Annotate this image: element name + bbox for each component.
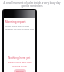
- staticText: gentle reminders: [0, 4, 64, 8]
- button[interactable]: [4, 10, 35, 18]
- staticText: Today there are no new updates to look a…: [5, 25, 36, 30]
- staticText: A small moment of calm inside a very bus…: [0, 1, 64, 5]
- staticText: Nothing here yet: [8, 56, 31, 60]
- staticText: Morning report: [5, 20, 26, 24]
- staticText: Refresh: [16, 70, 24, 72]
- staticText: please check back later: [8, 61, 32, 64]
- button[interactable]: Refresh: [14, 69, 26, 72]
- staticText: nothing to see: [12, 65, 27, 68]
